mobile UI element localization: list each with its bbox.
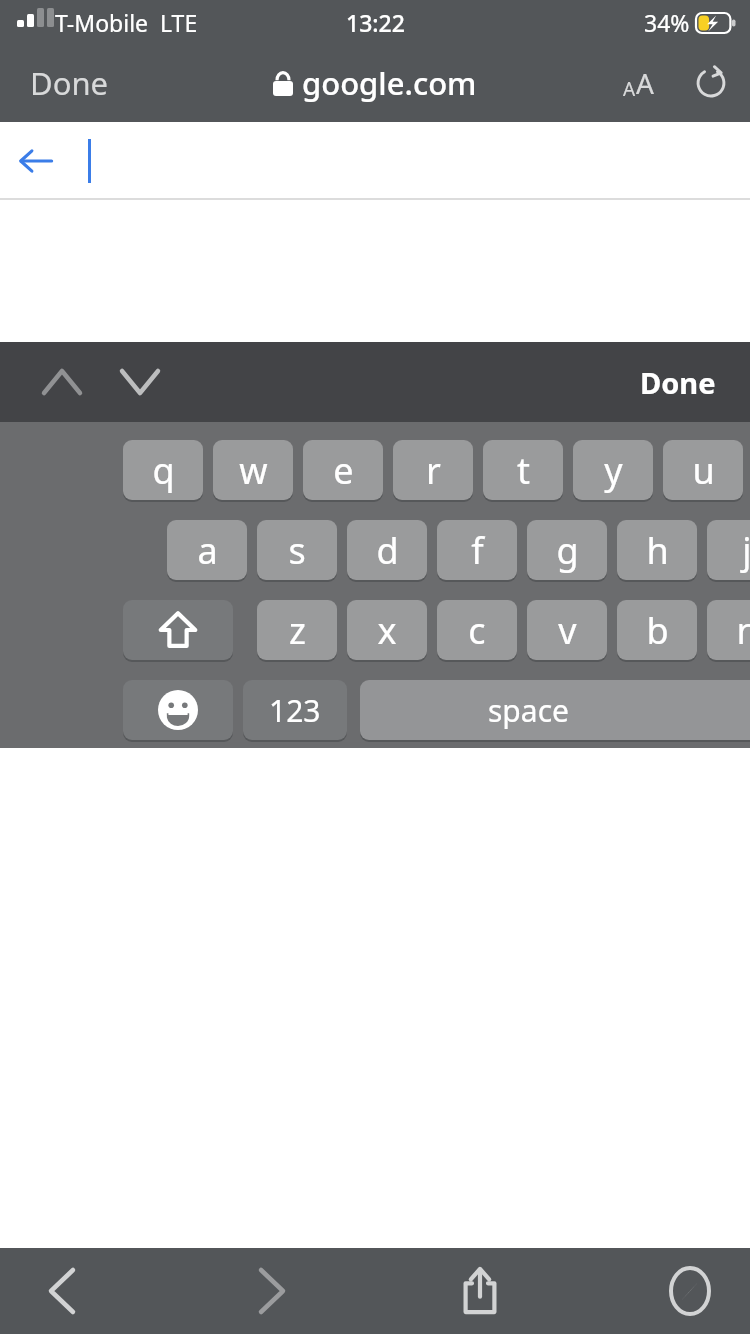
button[interactable]: Reload <box>688 60 734 106</box>
button[interactable]: v <box>527 600 607 660</box>
staticText: 13:22 <box>346 7 405 38</box>
staticText: q <box>152 446 175 495</box>
staticText: j <box>742 526 750 575</box>
button[interactable]: x <box>347 600 427 660</box>
button[interactable]: r <box>393 440 473 500</box>
button[interactable]: 123 <box>243 680 347 740</box>
staticText: 123 <box>269 690 321 731</box>
button[interactable]: b <box>617 600 697 660</box>
button[interactable]: s <box>257 520 337 580</box>
staticText: A <box>636 64 654 102</box>
button[interactable]: c <box>437 600 517 660</box>
staticText: b <box>646 606 669 655</box>
staticText: A <box>623 76 636 102</box>
staticText: c <box>468 606 486 655</box>
button[interactable]: e <box>303 440 383 500</box>
staticText: z <box>289 606 306 655</box>
staticText: Done <box>640 363 716 402</box>
staticText: x <box>377 606 397 655</box>
button[interactable]: a <box>167 520 247 580</box>
button[interactable]: Shift <box>123 600 233 660</box>
staticText: t <box>517 446 530 495</box>
staticText: d <box>376 526 399 575</box>
staticText: s <box>288 526 306 575</box>
staticText: space <box>488 690 569 731</box>
button[interactable]: Text size <box>610 55 666 111</box>
button[interactable]: Back <box>8 133 64 189</box>
staticText: T-Mobile LTE <box>55 7 198 38</box>
staticText: e <box>333 446 354 495</box>
button[interactable]: Forward <box>238 1257 306 1325</box>
button[interactable]: f <box>437 520 517 580</box>
staticText: google.com <box>302 62 477 104</box>
staticText: g <box>556 526 579 575</box>
staticText: f <box>471 526 484 575</box>
button[interactable]: n <box>707 600 750 660</box>
staticText: u <box>692 446 715 495</box>
staticText: r <box>426 446 441 495</box>
button[interactable]: z <box>257 600 337 660</box>
button[interactable]: Emoji <box>123 680 233 740</box>
button[interactable]: w <box>213 440 293 500</box>
staticText: v <box>558 606 577 655</box>
staticText: h <box>646 526 669 575</box>
button[interactable]: Back <box>28 1257 96 1325</box>
staticText: w <box>239 446 268 495</box>
button[interactable]: Next field <box>108 350 172 414</box>
staticText: a <box>197 526 218 575</box>
button[interactable]: g <box>527 520 607 580</box>
button[interactable]: Previous field <box>30 350 94 414</box>
button[interactable]: t <box>483 440 563 500</box>
button[interactable]: Bookmarks <box>656 1257 724 1325</box>
staticText: y <box>604 446 623 495</box>
button[interactable]: space <box>360 680 750 740</box>
button[interactable]: Done <box>20 56 119 110</box>
button[interactable]: y <box>573 440 653 500</box>
button[interactable]: h <box>617 520 697 580</box>
staticText: Done <box>30 62 109 104</box>
button[interactable]: j <box>707 520 750 580</box>
button[interactable]: d <box>347 520 427 580</box>
button[interactable]: u <box>663 440 743 500</box>
staticText: n <box>736 606 750 655</box>
button[interactable]: Done <box>632 355 724 410</box>
button[interactable]: Share <box>446 1257 514 1325</box>
button[interactable]: q <box>123 440 203 500</box>
staticText: 34% <box>644 7 690 38</box>
